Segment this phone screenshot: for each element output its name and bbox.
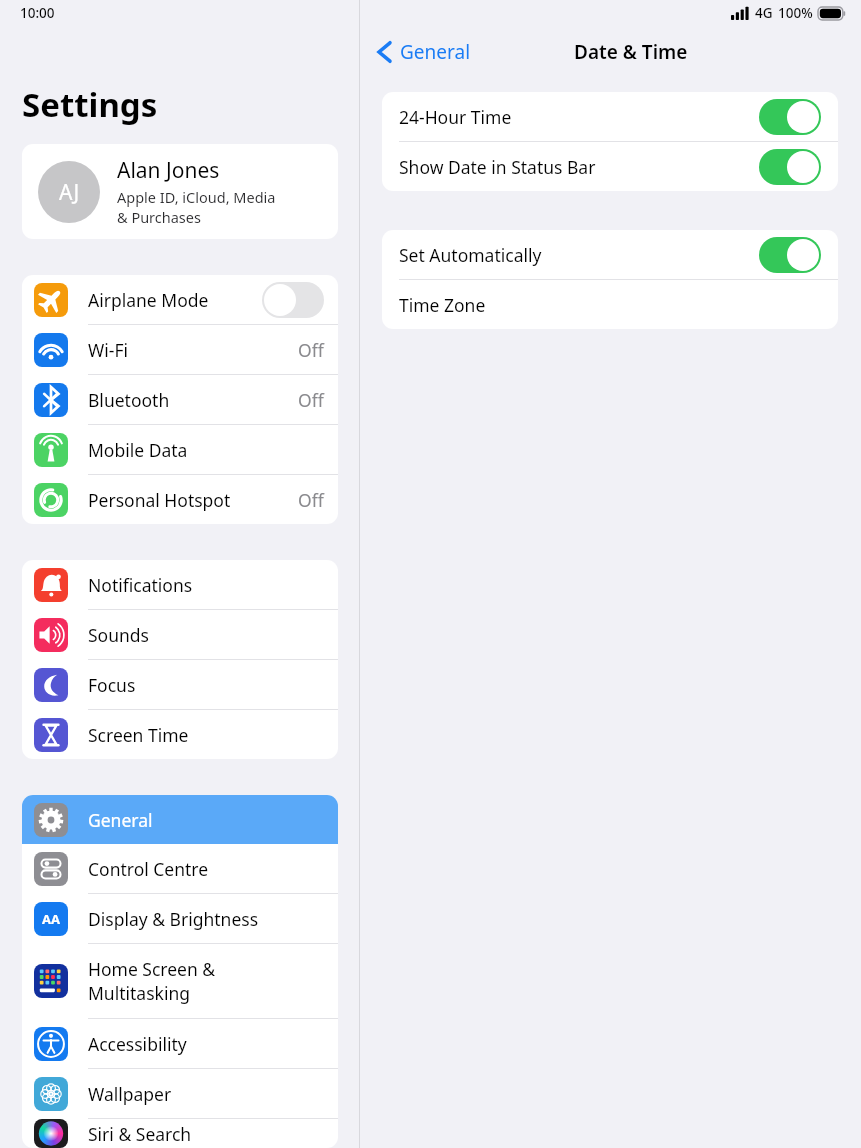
button[interactable]: Home Screen & Multitasking [22, 944, 338, 1018]
button[interactable]: Control Centre [22, 844, 338, 893]
staticText: Control Centre [88, 857, 324, 881]
button[interactable]: Notifications [22, 560, 338, 609]
button[interactable]: Time Zone [382, 280, 838, 329]
staticText: Alan Jones [117, 156, 220, 185]
button[interactable]: On [759, 237, 821, 273]
staticText: & Purchases [117, 207, 201, 227]
staticText: Home Screen & Multitasking [88, 957, 324, 1005]
button[interactable]: Mobile Data [22, 425, 338, 474]
staticText: Off [298, 488, 324, 512]
staticText: General [400, 39, 471, 65]
button[interactable]: Focus [22, 660, 338, 709]
button[interactable]: Accessibility [22, 1019, 338, 1068]
staticText: Off [298, 338, 324, 362]
button[interactable]: Wi-Fi [22, 325, 338, 374]
staticText: Notifications [88, 573, 324, 597]
staticText: Personal Hotspot [88, 488, 298, 512]
staticText: Set Automatically [399, 243, 759, 267]
button[interactable]: Sounds [22, 610, 338, 659]
button[interactable]: Set Automatically [382, 230, 838, 279]
staticText: Siri & Search [88, 1122, 324, 1146]
button[interactable]: Off [262, 282, 324, 318]
button[interactable]: On [759, 99, 821, 135]
staticText: 10:00 [20, 4, 55, 22]
button[interactable]: AJ [22, 144, 338, 239]
staticText: 24-Hour Time [399, 105, 759, 129]
staticText: 100% [778, 4, 813, 22]
staticText: Wi-Fi [88, 338, 298, 362]
button[interactable]: Bluetooth [22, 375, 338, 424]
button[interactable]: Wallpaper [22, 1069, 338, 1118]
button[interactable]: General [22, 795, 338, 844]
staticText: Settings [22, 82, 158, 127]
button[interactable]: Screen Time [22, 710, 338, 759]
staticText: Time Zone [399, 293, 821, 317]
staticText: Focus [88, 673, 324, 697]
staticText: General [88, 808, 324, 832]
button[interactable]: AA [22, 894, 338, 943]
staticText: 4G [755, 4, 773, 22]
staticText: Display & Brightness [88, 907, 324, 931]
button[interactable]: Personal Hotspot [22, 475, 338, 524]
staticText: Date & Time [574, 39, 688, 65]
button[interactable]: On [759, 149, 821, 185]
button[interactable]: Show Date in Status Bar [382, 142, 838, 191]
staticText: Airplane Mode [88, 288, 262, 312]
staticText: Accessibility [88, 1032, 324, 1056]
staticText: AA [42, 910, 60, 928]
staticText: Screen Time [88, 723, 324, 747]
staticText: Off [298, 388, 324, 412]
button[interactable]: General [372, 33, 477, 71]
button[interactable]: Airplane Mode [22, 275, 338, 324]
button[interactable]: Siri & Search [22, 1119, 338, 1148]
staticText: Mobile Data [88, 438, 324, 462]
staticText: Show Date in Status Bar [399, 155, 759, 179]
staticText: AJ [59, 178, 80, 207]
staticText: Wallpaper [88, 1082, 324, 1106]
staticText: Sounds [88, 623, 324, 647]
staticText: Apple ID, iCloud, Media [117, 187, 276, 207]
button[interactable]: 24-Hour Time [382, 92, 838, 141]
staticText: Bluetooth [88, 388, 298, 412]
